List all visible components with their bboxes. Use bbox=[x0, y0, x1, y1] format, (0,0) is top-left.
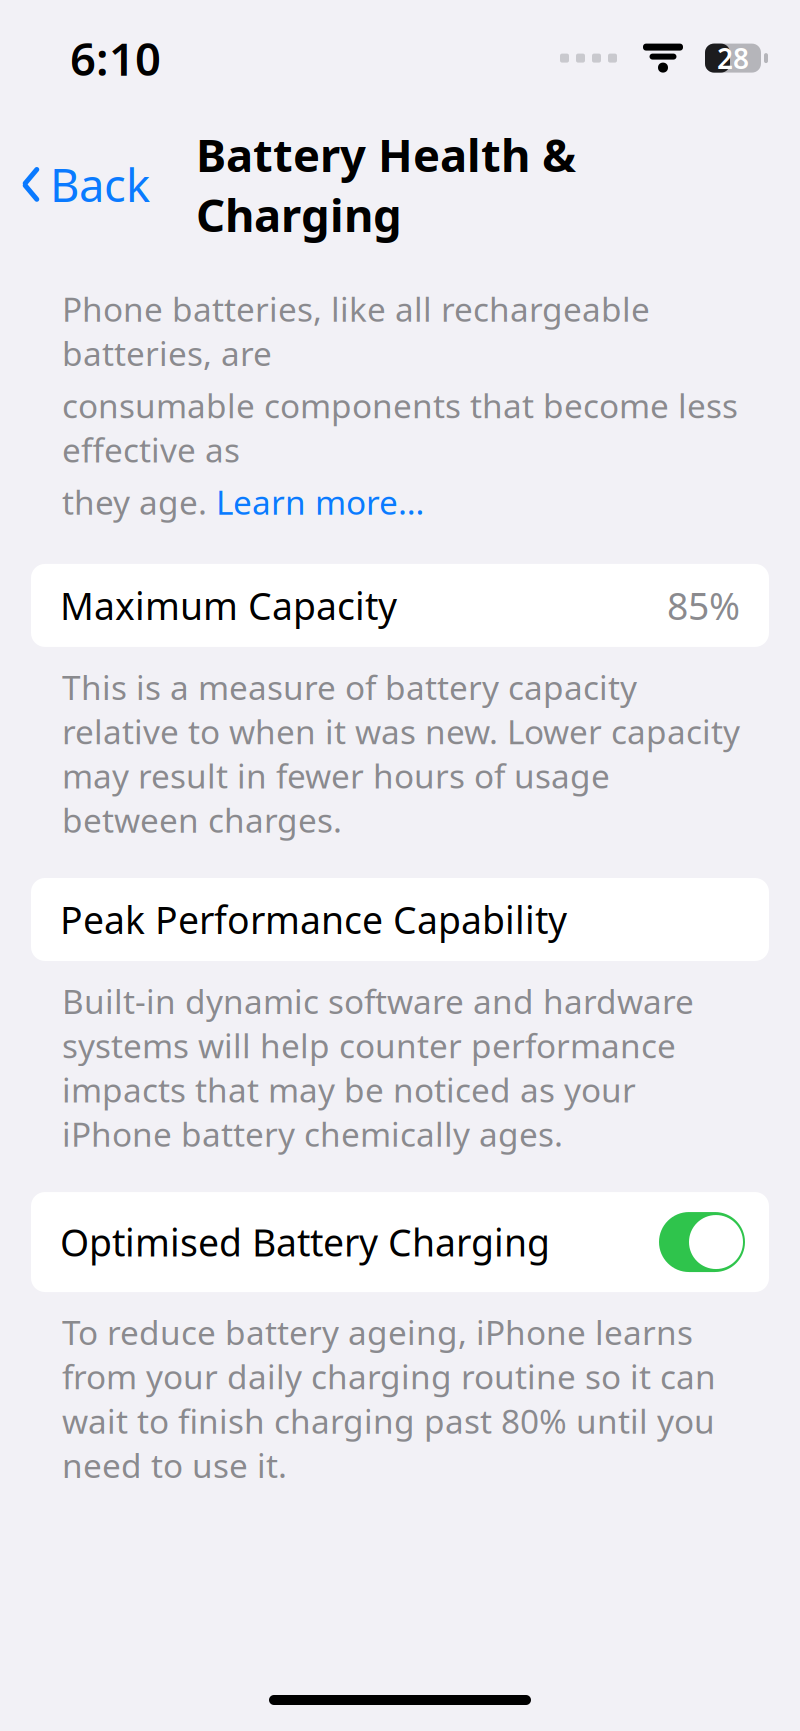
button[interactable]: Maximum Capacity bbox=[31, 564, 769, 647]
staticText: Optimised Battery Charging bbox=[60, 1217, 550, 1267]
staticText: Battery Health & Charging bbox=[196, 124, 576, 245]
staticText: 85% bbox=[667, 581, 740, 630]
button[interactable]: Peak Performance Capability bbox=[31, 878, 769, 961]
button[interactable]: Optimised Battery Charging bbox=[31, 1192, 769, 1292]
staticText: Built-in dynamic software and hardware s… bbox=[62, 979, 694, 1156]
staticText: 6:10 bbox=[70, 28, 161, 88]
staticText: they age. bbox=[62, 480, 216, 524]
staticText: Maximum Capacity bbox=[60, 581, 397, 630]
staticText: Learn more… bbox=[216, 480, 424, 524]
staticText: consumable components that become less e… bbox=[62, 383, 738, 472]
staticText: To reduce battery ageing, iPhone learns … bbox=[62, 1310, 716, 1487]
staticText: Peak Performance Capability bbox=[60, 895, 567, 944]
staticText: Phone batteries, like all rechargeable b… bbox=[62, 287, 650, 375]
button[interactable]: Learn more… bbox=[216, 480, 424, 524]
staticText: 28 bbox=[717, 39, 749, 77]
button[interactable]: Back bbox=[0, 144, 150, 224]
staticText: Back bbox=[50, 154, 150, 214]
staticText: This is a measure of battery capacity re… bbox=[62, 665, 740, 842]
